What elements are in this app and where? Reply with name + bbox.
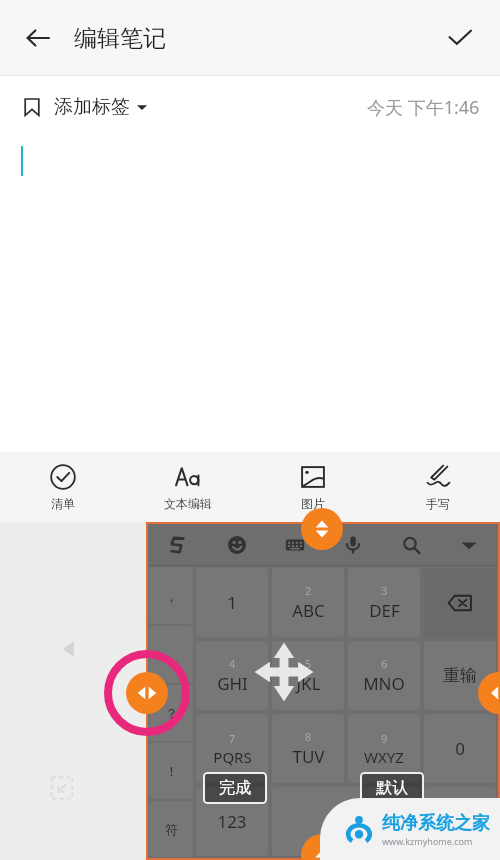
button[interactable]: 9 [348,714,420,783]
button[interactable]: ！ [149,743,193,799]
button[interactable]: 完成 [219,778,251,798]
staticText: MNO [363,672,405,695]
staticText: 今天 下午1:46 [367,95,480,120]
button[interactable]: Search [382,524,440,566]
staticText: 手写 [426,496,450,511]
staticText: WXYZ [364,747,404,767]
button[interactable]: Hide keyboard [440,524,498,566]
button[interactable]: Space [272,787,420,856]
staticText: ， [165,588,178,604]
staticText: 清单 [51,496,75,511]
button[interactable]: Save [436,14,484,62]
button[interactable]: 手写 [375,452,500,522]
button[interactable]: 4 [196,641,268,710]
staticText: JKL [296,672,321,695]
staticText: 文本编辑 [164,496,212,511]
staticText: 2 [305,583,312,598]
staticText: www.kzmyhome.com [382,835,473,847]
button[interactable]: Resize bottom edge [301,834,343,860]
staticText: 123 [217,810,247,833]
staticText: ？ [165,705,178,721]
button[interactable]: Sogou [148,524,207,566]
button[interactable]: Move keyboard vertically [301,508,343,550]
button[interactable]: 5 [272,641,344,710]
staticText: 重输 [443,665,477,686]
button[interactable]: Move left [52,632,86,666]
button[interactable]: 图片 [250,452,375,522]
staticText: 6 [381,656,388,671]
button[interactable]: 符 [149,801,193,857]
staticText: 1 [227,591,237,614]
staticText: DEF [369,599,400,622]
button[interactable]: 重输 [424,641,496,710]
staticText: 图片 [301,496,325,511]
staticText: 。 [165,647,178,663]
button[interactable]: 添加标签 [22,95,148,119]
staticText: 符 [165,821,178,837]
staticText: 8 [305,729,312,744]
button[interactable]: Backspace [424,568,496,637]
button[interactable]: 7 [196,714,268,783]
button[interactable]: 123 [196,787,268,856]
staticText: PQRS [213,747,252,767]
button[interactable]: 2 [272,568,344,637]
staticText: 9 [381,731,388,746]
button[interactable]: 0 [424,714,496,783]
staticText: 7 [229,731,236,746]
button[interactable]: 。 [149,626,193,683]
button[interactable]: Back [14,14,62,62]
button[interactable]: Resize right edge [478,672,500,714]
button[interactable]: 默认 [376,778,408,798]
button[interactable]: 8 [272,714,344,783]
staticText: TUV [292,745,325,768]
button[interactable]: Resize keyboard [44,770,80,806]
button[interactable]: Move keyboard horizontally [126,672,168,714]
staticText: 换行 [443,811,477,832]
button[interactable]: Emoji [207,524,266,566]
staticText: ABC [292,599,325,622]
staticText: 添加标签 [54,95,130,119]
button[interactable]: 3 [348,568,420,637]
button[interactable]: Voice input [324,524,382,566]
staticText: 完成 [219,778,251,798]
staticText: 纯净系统之家 [382,812,490,835]
staticText: 3 [381,583,388,598]
staticText: 5 [305,656,312,671]
button[interactable]: Keyboard layout [266,524,324,566]
button[interactable]: ？ [149,685,193,741]
button[interactable]: 换行 [424,787,496,856]
staticText: 编辑笔记 [74,24,166,53]
staticText: 默认 [376,778,408,798]
staticText: ！ [165,763,178,779]
button[interactable]: 清单 [0,452,125,522]
button[interactable]: 1 [196,568,268,637]
staticText: 4 [229,656,236,671]
staticText: 0 [455,737,465,760]
button[interactable]: 文本编辑 [125,452,250,522]
button[interactable]: 6 [348,641,420,710]
staticText: GHI [217,672,248,695]
